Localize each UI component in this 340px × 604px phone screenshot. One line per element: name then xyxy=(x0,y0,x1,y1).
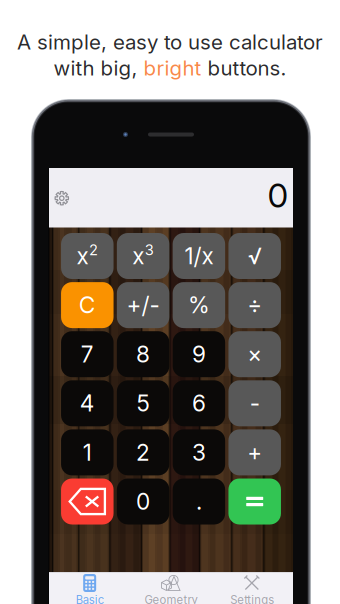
button[interactable]: % xyxy=(173,282,225,328)
staticText: Geometry xyxy=(144,593,197,604)
staticText: 0 xyxy=(267,175,288,215)
staticText: with big, xyxy=(53,56,143,80)
button[interactable]: Settings xyxy=(45,181,79,215)
staticText: bright xyxy=(143,56,201,80)
staticText: Settings xyxy=(230,593,274,604)
button[interactable]: 2 xyxy=(117,429,169,475)
staticText: 4 xyxy=(80,390,95,417)
button[interactable] xyxy=(228,478,281,524)
button[interactable]: ÷ xyxy=(228,282,281,328)
button[interactable]: 3 xyxy=(173,429,225,475)
staticText: 7 xyxy=(81,340,94,368)
staticText: 5 xyxy=(137,390,150,417)
button[interactable]: 5 xyxy=(117,380,169,426)
button[interactable]: Settings xyxy=(212,570,293,604)
button[interactable]: 6 xyxy=(173,380,225,426)
staticText: 1/x xyxy=(184,242,213,270)
button[interactable]: 9 xyxy=(173,331,225,377)
staticText: 8 xyxy=(136,340,150,368)
button[interactable]: 0 xyxy=(117,478,169,524)
button[interactable]: - xyxy=(228,380,281,426)
staticText: 0 xyxy=(136,488,150,515)
staticText: 1 xyxy=(83,439,92,466)
button[interactable]: 4 xyxy=(61,380,113,426)
button[interactable]: C xyxy=(61,282,113,328)
button[interactable]: 7 xyxy=(61,331,113,377)
button[interactable]: 8 xyxy=(117,331,169,377)
staticText: + xyxy=(247,439,262,466)
staticText: A simple, easy to use calculator xyxy=(17,30,323,54)
staticText: buttons. xyxy=(201,56,286,80)
button[interactable]: x xyxy=(61,233,113,279)
button[interactable]: 1 xyxy=(61,429,113,475)
staticText: 9 xyxy=(192,340,206,368)
staticText: Basic xyxy=(76,593,104,604)
staticText: 6 xyxy=(192,390,206,417)
staticText: √ xyxy=(248,242,262,270)
staticText: - xyxy=(250,390,260,417)
button[interactable]: +/- xyxy=(117,282,169,328)
button[interactable]: + xyxy=(228,429,281,475)
staticText: 3 xyxy=(145,241,154,259)
staticText: x xyxy=(132,242,144,270)
staticText: +/- xyxy=(127,291,160,319)
staticText: x xyxy=(76,242,88,270)
staticText: 2 xyxy=(136,439,150,466)
button[interactable]: × xyxy=(228,331,281,377)
button[interactable]: 1/x xyxy=(173,233,225,279)
staticText: 2 xyxy=(89,241,98,259)
button[interactable]: Basic xyxy=(49,570,130,604)
staticText: C xyxy=(79,291,96,319)
staticText: % xyxy=(188,291,210,319)
button[interactable] xyxy=(61,478,113,524)
staticText: ÷ xyxy=(247,291,262,319)
button[interactable]: . xyxy=(173,478,225,524)
staticText: × xyxy=(247,340,262,368)
button[interactable]: x xyxy=(117,233,169,279)
button[interactable]: Geometry xyxy=(130,570,212,604)
staticText: 3 xyxy=(192,439,206,466)
staticText: . xyxy=(196,488,202,515)
button[interactable]: √ xyxy=(228,233,281,279)
